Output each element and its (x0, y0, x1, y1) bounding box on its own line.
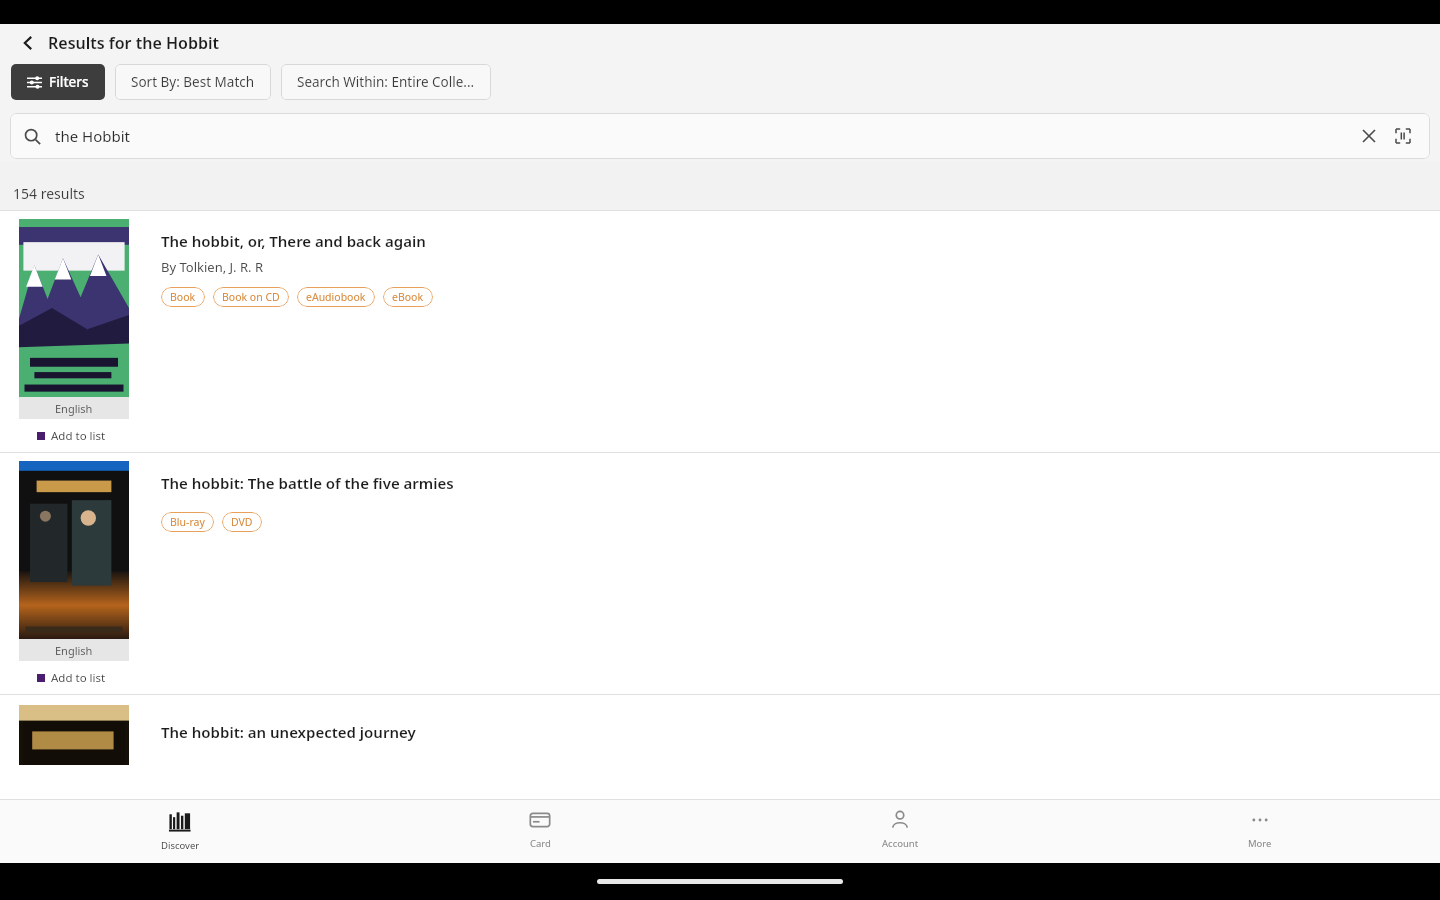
button[interactable]: Card (360, 800, 720, 863)
button[interactable]: Discover (0, 800, 360, 863)
staticText: Blu-ray (170, 515, 205, 529)
button[interactable]: Add to list (19, 428, 129, 444)
staticText: eAudiobook (306, 290, 366, 304)
staticText: Account (882, 837, 919, 850)
staticText: Search Within: Entire Colle... (297, 73, 475, 91)
button[interactable]: Book (161, 287, 205, 307)
button[interactable]: The hobbit: an unexpected journey (0, 695, 1440, 765)
staticText: Book (170, 290, 196, 304)
staticText: By Tolkien, J. R. R (161, 258, 263, 276)
button[interactable]: Blu-ray (161, 512, 214, 532)
button[interactable]: the Hobbit (10, 113, 1430, 159)
staticText: Results for the Hobbit (48, 32, 219, 54)
staticText: The hobbit, or, There and back again (161, 231, 426, 251)
staticText: Book on CD (222, 290, 280, 304)
button[interactable]: Clear search (1356, 123, 1382, 149)
button[interactable]: DVD (222, 512, 262, 532)
button[interactable]: Book on CD (213, 287, 289, 307)
staticText: the Hobbit (55, 126, 130, 146)
staticText: DVD (231, 515, 253, 529)
staticText: Card (530, 837, 551, 850)
button[interactable]: English (0, 211, 1440, 452)
staticText: Filters (49, 73, 89, 91)
button[interactable]: Add to list (19, 670, 129, 686)
staticText: The hobbit: The battle of the five armie… (161, 473, 454, 493)
button[interactable]: Filters (11, 64, 105, 100)
staticText: The hobbit: an unexpected journey (161, 722, 416, 742)
staticText: Discover (161, 839, 200, 852)
button[interactable]: eAudiobook (297, 287, 375, 307)
button[interactable]: Back (14, 29, 42, 57)
staticText: 154 results (13, 184, 85, 203)
button[interactable]: Sort By: Best Match (115, 64, 271, 100)
staticText: Sort By: Best Match (131, 73, 255, 91)
button[interactable]: eBook (383, 287, 433, 307)
button[interactable]: Search Within: Entire Colle... (281, 64, 491, 100)
button[interactable]: Scan barcode (1390, 123, 1416, 149)
staticText: Add to list (51, 670, 106, 686)
staticText: More (1248, 837, 1272, 850)
staticText: English (55, 401, 93, 416)
staticText: Add to list (51, 428, 106, 444)
button[interactable]: English (0, 453, 1440, 694)
staticText: eBook (392, 290, 424, 304)
button[interactable]: More (1080, 800, 1440, 863)
staticText: English (55, 643, 93, 658)
button[interactable]: Account (720, 800, 1080, 863)
